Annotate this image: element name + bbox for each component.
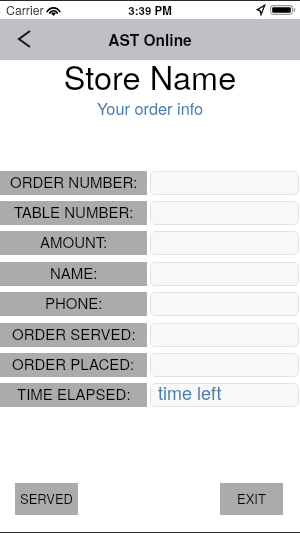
staticText: Carrier — [6, 1, 44, 19]
button[interactable]: TABLE NUMBER: — [0, 201, 147, 225]
button[interactable]: EXIT — [220, 483, 283, 515]
button[interactable]: ORDER PLACED: — [0, 353, 147, 377]
staticText: 3:39 PM — [0, 2, 300, 18]
button[interactable]: AMOUNT: — [0, 231, 147, 255]
staticText: ORDER PLACED: — [12, 353, 135, 374]
button[interactable]: ORDER SERVED: — [150, 323, 299, 347]
staticText: ORDER NUMBER: — [10, 171, 138, 192]
staticText: TABLE NUMBER: — [14, 201, 134, 222]
staticText: EXIT — [237, 489, 266, 508]
button[interactable]: TABLE NUMBER: — [150, 201, 299, 225]
button[interactable]: ORDER PLACED: — [150, 353, 299, 377]
button[interactable]: Back — [0, 19, 46, 60]
button[interactable]: ORDER NUMBER: — [150, 171, 299, 195]
staticText: Store Name — [0, 53, 300, 100]
staticText: TIME ELAPSED: — [17, 383, 131, 404]
staticText: PHONE: — [45, 292, 103, 313]
button[interactable]: NAME: — [150, 262, 299, 286]
staticText: NAME: — [50, 262, 98, 283]
button[interactable]: SERVED — [15, 483, 78, 515]
button[interactable]: ORDER NUMBER: — [0, 171, 147, 195]
button[interactable]: AMOUNT: — [150, 231, 299, 255]
staticText: SERVED — [20, 489, 73, 508]
button[interactable]: PHONE: — [0, 292, 147, 316]
staticText: ORDER SERVED: — [12, 323, 136, 344]
staticText: Your order info — [0, 96, 300, 119]
button[interactable]: NAME: — [0, 262, 147, 286]
staticText: time left — [158, 383, 222, 403]
button[interactable]: ORDER SERVED: — [0, 323, 147, 347]
button[interactable]: TIME ELAPSED: — [0, 383, 147, 407]
staticText: AMOUNT: — [40, 231, 108, 252]
button[interactable]: PHONE: — [150, 292, 299, 316]
button[interactable]: TIME ELAPSED: — [150, 383, 299, 407]
staticText: AST Online — [0, 29, 300, 51]
